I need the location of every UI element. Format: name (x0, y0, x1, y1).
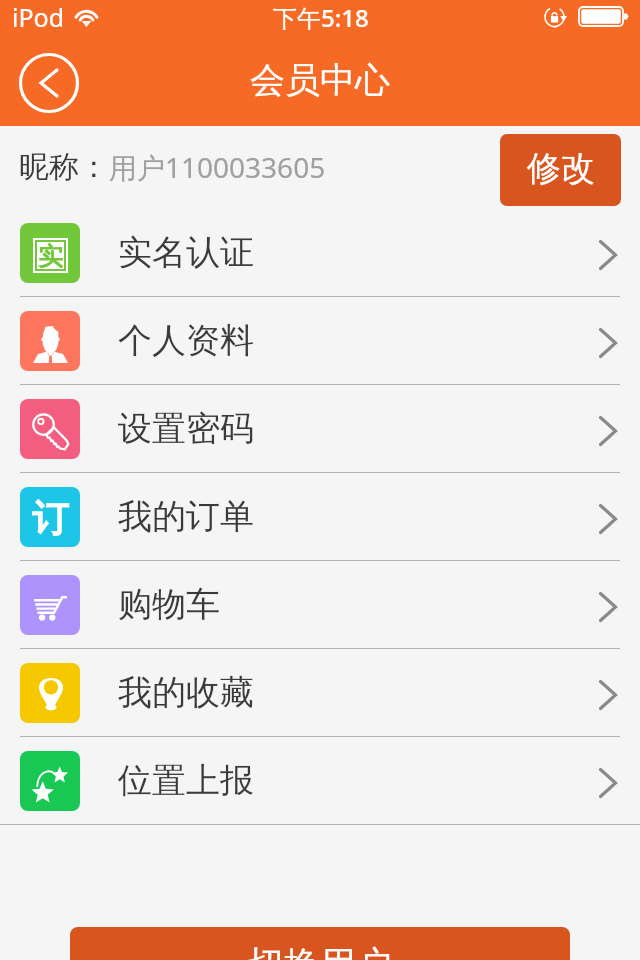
staticText: 位置上报 (118, 759, 254, 802)
button[interactable]: 实 (0, 209, 640, 297)
staticText: 会员中心 (250, 58, 390, 102)
button[interactable]: Back (18, 52, 80, 114)
button[interactable]: 修改 (500, 134, 621, 206)
staticText: 修改 (527, 147, 595, 190)
staticText: 我的收藏 (118, 671, 254, 714)
button[interactable]: 订 (0, 473, 640, 561)
button[interactable]: 购物车 (0, 561, 640, 649)
staticText: 个人资料 (118, 319, 254, 362)
button[interactable]: 位置上报 (0, 737, 640, 825)
button[interactable]: 切换用户 (70, 927, 570, 960)
staticText: 昵称： (19, 148, 109, 186)
staticText: 切换用户 (248, 942, 392, 960)
button[interactable]: 设置密码 (0, 385, 640, 473)
staticText: 设置密码 (118, 407, 254, 450)
staticText: 我的订单 (118, 495, 254, 538)
staticText: 用户1100033605 (109, 148, 326, 186)
staticText: 订 (32, 495, 69, 542)
staticText: 实 (38, 241, 63, 268)
button[interactable]: 个人资料 (0, 297, 640, 385)
staticText: iPod (12, 0, 65, 34)
staticText: 购物车 (118, 583, 220, 626)
staticText: 下午5:18 (273, 1, 369, 34)
staticText: 实名认证 (118, 231, 254, 274)
button[interactable]: 我的收藏 (0, 649, 640, 737)
